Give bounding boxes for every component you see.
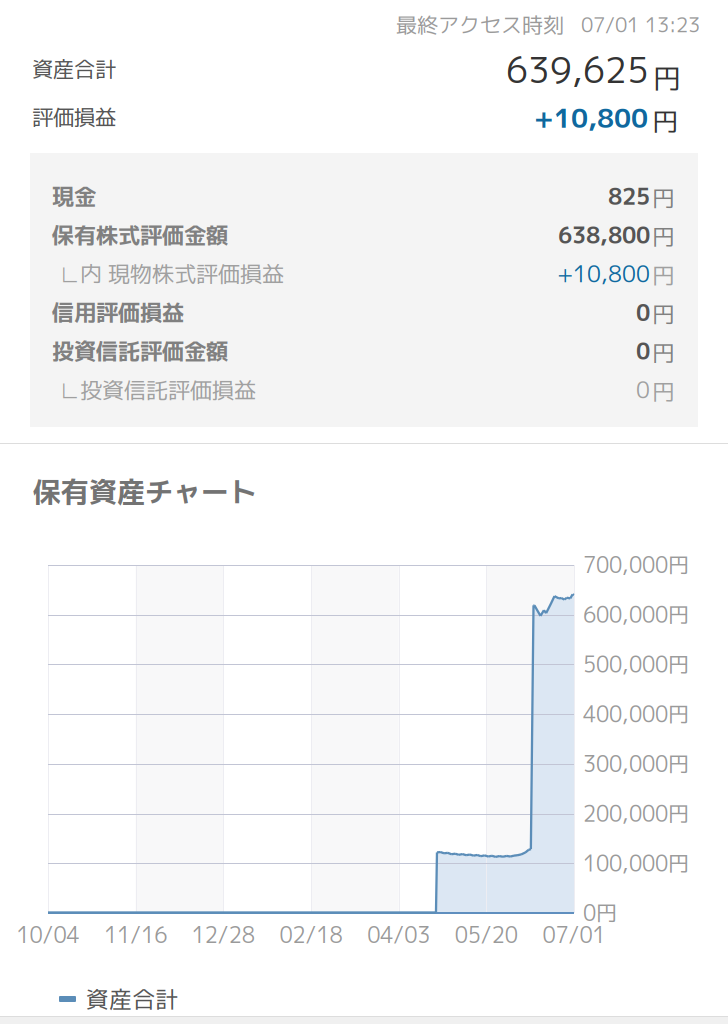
staticText: 0円	[583, 898, 617, 928]
staticText: 内 現物株式評価損益	[80, 258, 284, 289]
staticText: 円	[652, 260, 675, 291]
staticText: 600,000円	[583, 600, 689, 630]
staticText: 円	[652, 376, 675, 408]
staticText: 11/16	[104, 920, 167, 950]
staticText: 300,000円	[583, 749, 689, 779]
staticText: 円	[652, 182, 675, 214]
staticText: 04/03	[367, 920, 430, 950]
staticText: 保有資産チャート	[33, 472, 257, 511]
staticText: ∟	[60, 376, 79, 404]
staticText: 02/18	[279, 920, 342, 950]
staticText: ∟	[60, 260, 79, 288]
staticText: 639,625	[506, 45, 649, 94]
staticText: 最終アクセス時刻	[396, 10, 564, 39]
staticText: 10/04	[16, 920, 79, 950]
staticText: 700,000円	[583, 550, 689, 580]
staticText: 07/01 13:23	[581, 11, 700, 39]
staticText: +10,800	[534, 99, 648, 136]
staticText: 0	[636, 297, 650, 328]
staticText: 信用評価損益	[52, 297, 184, 328]
staticText: 05/20	[455, 920, 518, 950]
staticText: 投資信託評価金額	[52, 336, 228, 367]
staticText: 円	[653, 59, 681, 98]
staticText: 保有株式評価金額	[52, 220, 228, 250]
staticText: 638,800	[558, 219, 650, 251]
staticText: 0	[636, 374, 650, 405]
staticText: 円	[652, 299, 675, 330]
staticText: 12/28	[192, 920, 255, 950]
staticText: 825	[608, 181, 650, 212]
staticText: +10,800	[557, 258, 650, 289]
staticText: 400,000円	[583, 699, 689, 729]
staticText: 500,000円	[583, 649, 689, 679]
staticText: 200,000円	[583, 799, 689, 828]
staticText: 円	[652, 337, 675, 369]
staticText: 07/01	[542, 920, 605, 950]
staticText: 評価損益	[32, 102, 116, 132]
staticText: 円	[652, 221, 675, 253]
staticText: 現金	[52, 181, 96, 212]
staticText: 0	[636, 335, 650, 367]
staticText: 資産合計	[32, 54, 116, 84]
staticText: 資産合計	[86, 983, 178, 1015]
staticText: 円	[652, 103, 678, 140]
staticText: 投資信託評価損益	[80, 374, 256, 405]
staticText: 100,000円	[583, 848, 689, 878]
